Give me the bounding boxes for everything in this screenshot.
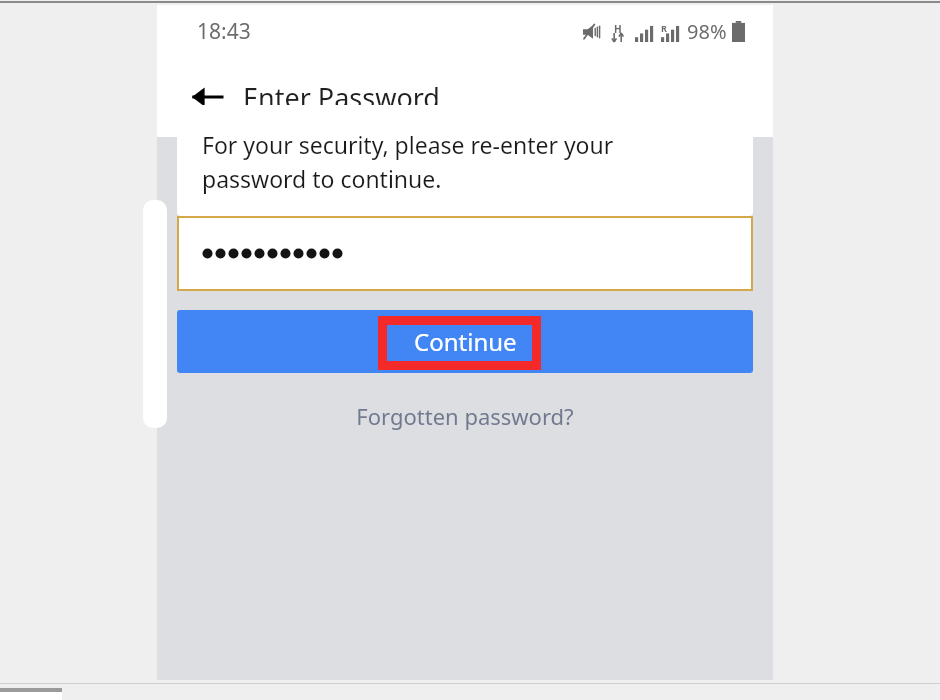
staticText: Enter Password	[243, 79, 440, 116]
staticText: 98%	[687, 18, 727, 45]
other: Battery 98 percent	[732, 21, 745, 42]
staticText: Continue	[414, 325, 517, 358]
button[interactable]	[177, 216, 753, 291]
button[interactable]: Forgotten password?	[350, 395, 580, 437]
button[interactable]: Back	[185, 75, 229, 119]
staticText: For your security, please re-enter your …	[202, 129, 614, 194]
other: Silent mode	[582, 23, 602, 41]
button[interactable]: Continue	[177, 310, 753, 373]
staticText: 18:43	[197, 17, 251, 46]
staticText: R	[661, 22, 667, 34]
staticText: H	[614, 22, 622, 36]
